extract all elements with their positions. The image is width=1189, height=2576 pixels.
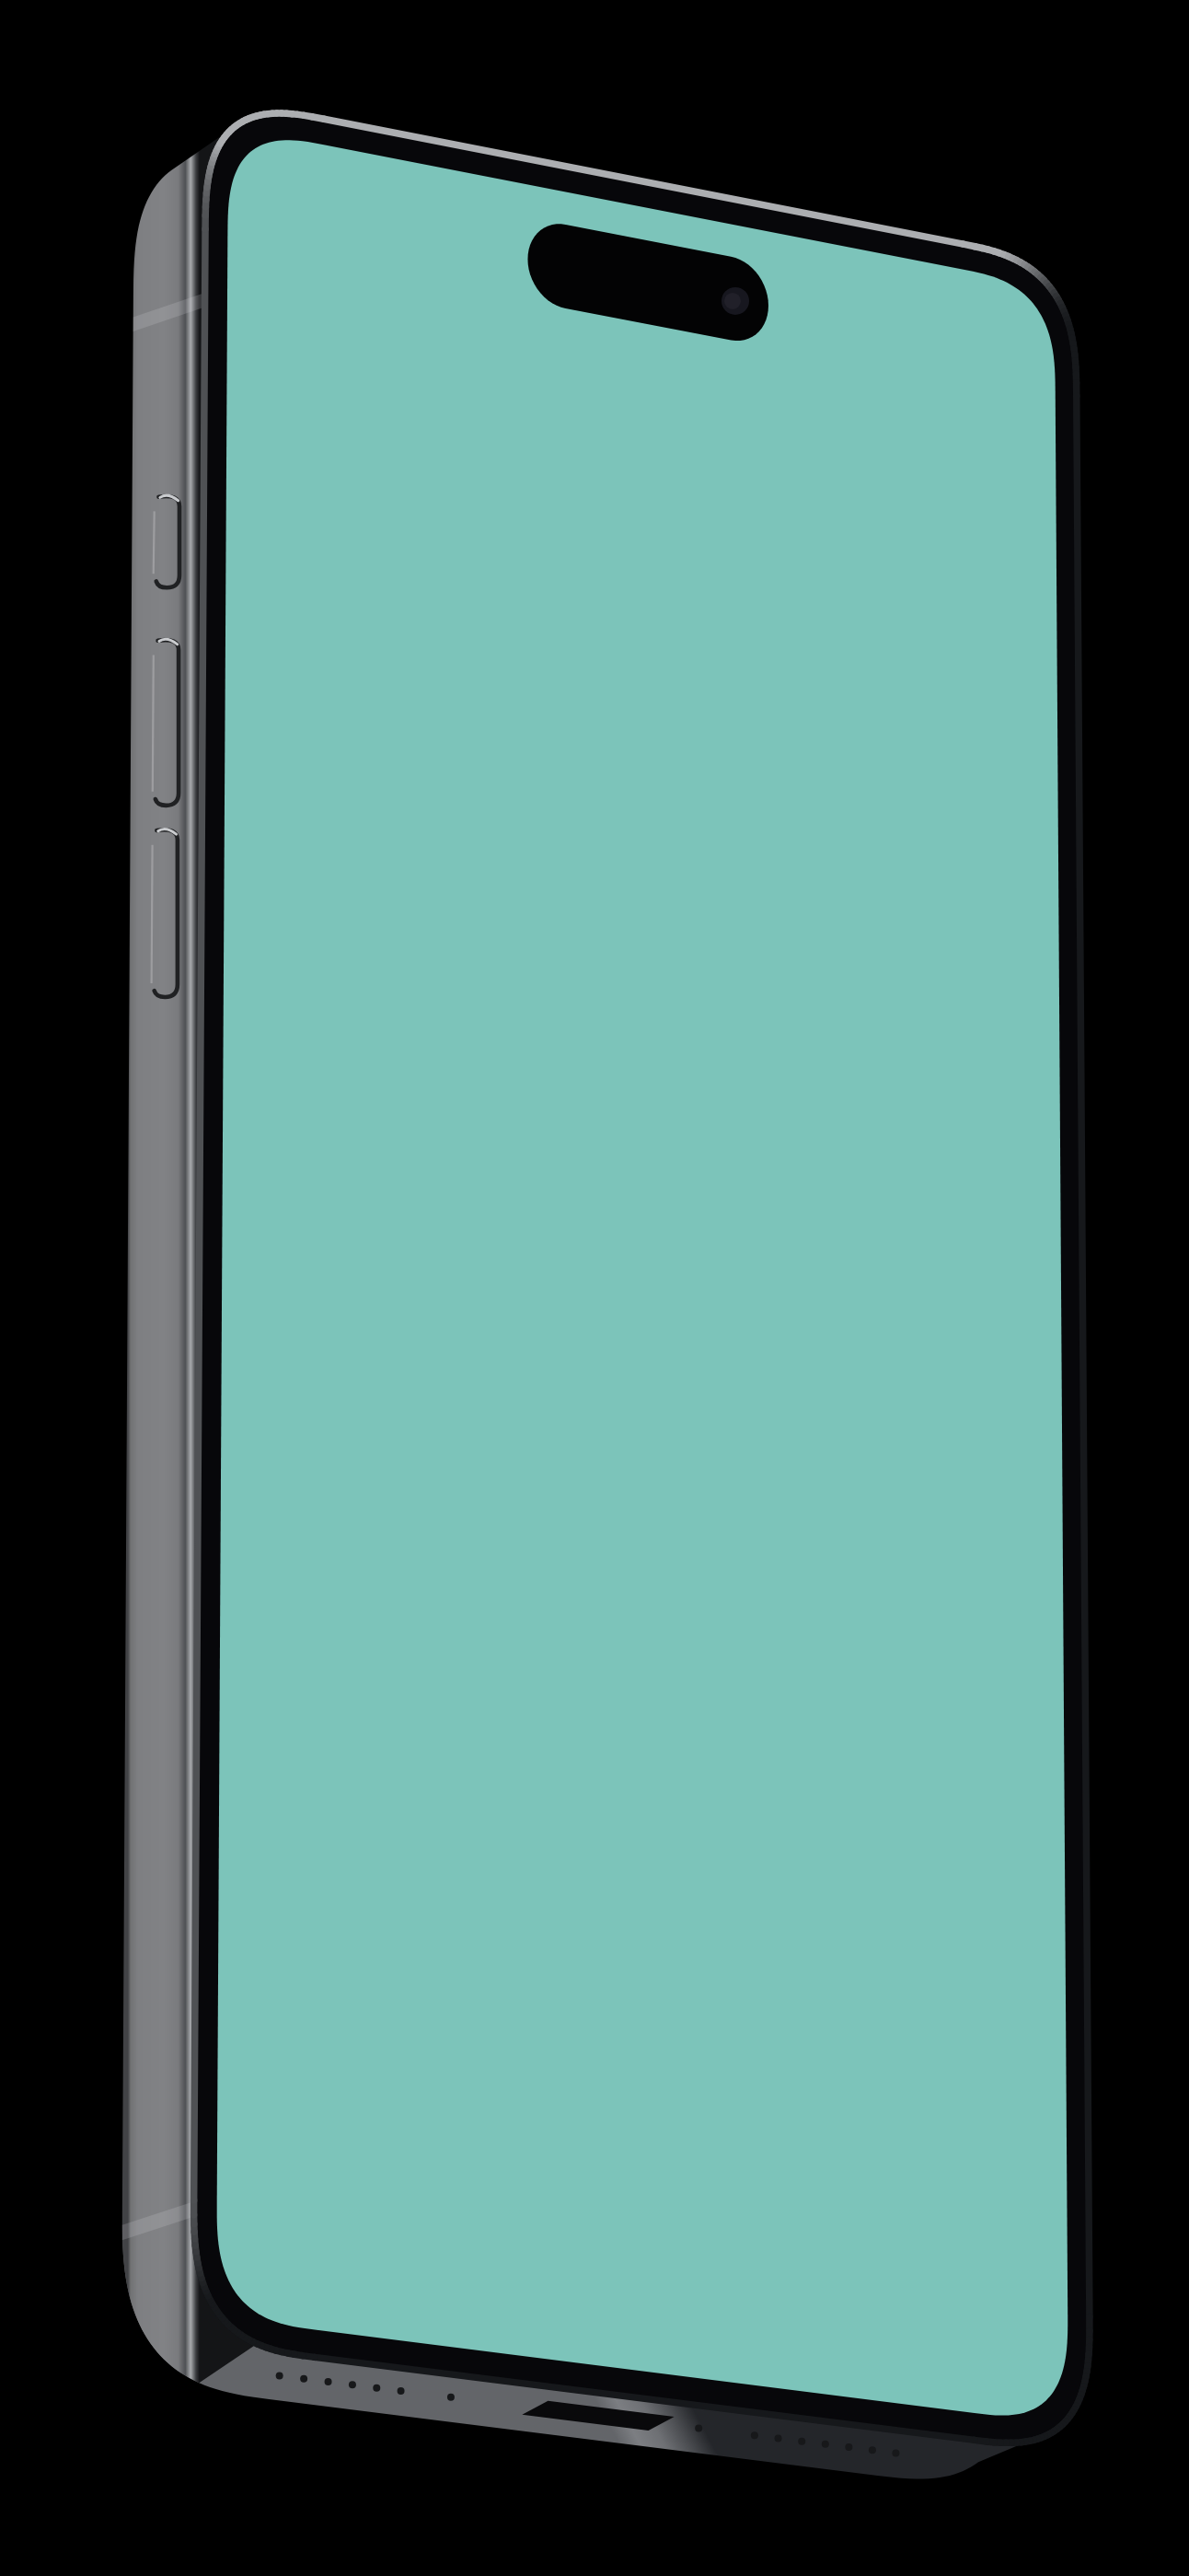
- button[interactable]: Volume up: [138, 626, 202, 806]
- button[interactable]: Volume down: [136, 818, 201, 997]
- button[interactable]: Ring / Silent switch: [140, 479, 204, 585]
- button[interactable]: Screen: [228, 129, 1066, 2421]
- button[interactable]: Side button: [1040, 644, 1101, 921]
